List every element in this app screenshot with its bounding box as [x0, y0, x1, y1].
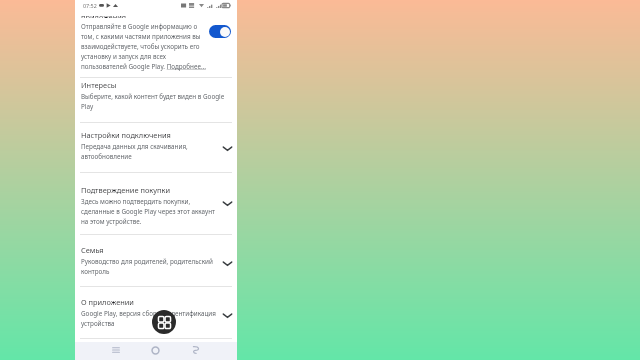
button[interactable]: Toggle app usage sharing	[209, 25, 231, 38]
button[interactable]: Home	[145, 340, 165, 360]
staticText: Передача данных для скачивания, автообно…	[81, 142, 216, 161]
button[interactable]: Screen recorder	[152, 310, 176, 334]
button[interactable]: Expand	[221, 197, 233, 209]
button[interactable]: Интересы	[75, 79, 237, 112]
button[interactable]: Expand	[221, 257, 233, 269]
button[interactable]: Expand	[221, 309, 233, 321]
staticText: Руководство для родителей, родительский …	[81, 257, 221, 276]
staticText: Настройки подключения	[81, 130, 171, 140]
staticText: Интересы	[81, 80, 117, 90]
staticText: Отправляйте в Google информацию о том, с…	[81, 22, 209, 71]
button[interactable]: Подтверждение покупки	[75, 184, 237, 227]
button[interactable]: Семья	[75, 244, 237, 277]
staticText: Подтверждение покупки	[81, 185, 170, 195]
staticText: Выберите, какой контент будет виден в Go…	[81, 92, 231, 111]
staticText: Здесь можно подтвердить покупки, сделанн…	[81, 197, 221, 226]
staticText: 07:52	[83, 2, 97, 9]
button[interactable]: Back	[186, 340, 206, 360]
staticText: приложения	[81, 13, 127, 18]
staticText: Семья	[81, 245, 104, 255]
staticText: Google Play, версия сборки, идентификаци…	[81, 309, 221, 328]
button[interactable]: Отправляйте в Google информацию о том, с…	[81, 22, 209, 71]
button[interactable]: О приложении	[75, 296, 237, 329]
staticText: О приложении	[81, 297, 134, 307]
button[interactable]: Expand	[221, 142, 233, 154]
button[interactable]: Настройки подключения	[75, 129, 237, 162]
button[interactable]: Recent apps	[106, 340, 126, 360]
